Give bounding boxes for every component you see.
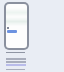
button[interactable] (7, 30, 17, 33)
